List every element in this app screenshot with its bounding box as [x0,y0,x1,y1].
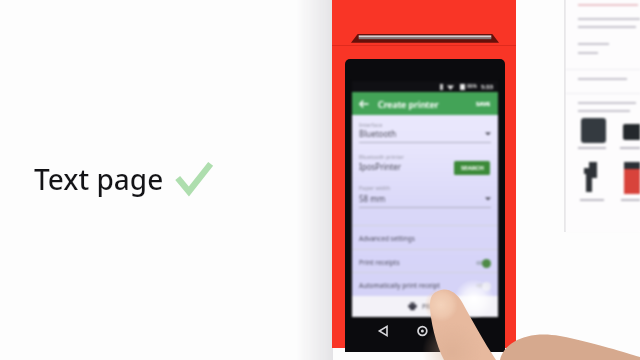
staticText: Print receipts [359,258,400,267]
button[interactable]: SEARCH [454,161,490,175]
button[interactable]: PRINT [352,296,498,317]
button[interactable]: Back [357,97,371,111]
staticText: Advanced settings [359,234,415,243]
button[interactable]: Advanced settings [352,226,498,251]
staticText: 88% [467,83,477,90]
button[interactable]: Automatically print receipt [352,273,498,298]
staticText: SEARCH [461,164,484,172]
staticText: PRINT [422,302,442,311]
button[interactable]: Home [413,322,433,340]
staticText: Bluetooth printer [359,153,404,160]
staticText: Create printer [378,98,439,110]
button[interactable]: Back [374,322,394,340]
button[interactable]: SAVE [475,97,492,111]
staticText: IposPrinter [359,161,402,172]
staticText: 58 mm [359,193,386,204]
staticText: SAVE [476,100,491,108]
staticText: Paper width [359,184,391,191]
staticText: Bluetooth [359,128,397,139]
staticText: Interface [359,121,383,128]
staticText: 5:33 [481,83,493,91]
button[interactable]: Print receipts [352,250,498,275]
staticText: Automatically print receipt [359,281,440,290]
staticText: Text page [34,160,164,198]
